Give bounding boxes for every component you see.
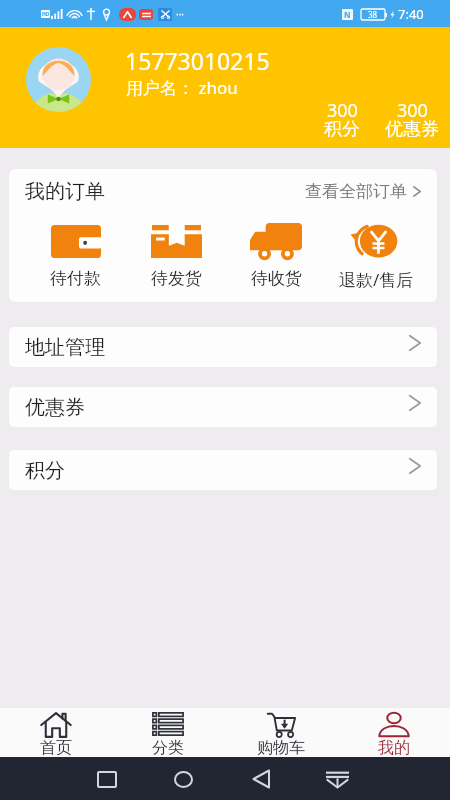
staticText: 待发货 xyxy=(151,268,202,289)
staticText: 地址管理 xyxy=(25,335,105,360)
button[interactable]: Hide navigation bar xyxy=(299,759,376,799)
staticText: 待收货 xyxy=(251,268,302,289)
staticText: ··· xyxy=(176,7,185,21)
button[interactable]: Home xyxy=(145,759,222,799)
staticText: 购物车 xyxy=(257,738,305,757)
staticText: 积分 xyxy=(25,458,65,483)
staticText: 我的 xyxy=(378,738,410,757)
staticText: 查看全部订单 xyxy=(305,181,407,202)
staticText: 分类 xyxy=(152,738,184,757)
button[interactable]: 首页 xyxy=(0,708,112,757)
staticText: 我的订单 xyxy=(25,179,105,204)
staticText: 积分 xyxy=(324,118,360,141)
button[interactable]: 我的订单 xyxy=(9,169,437,213)
button[interactable]: 待收货 xyxy=(226,213,326,302)
button[interactable]: Recent apps xyxy=(68,759,145,799)
staticText: HD xyxy=(42,11,50,18)
button[interactable]: 我的 xyxy=(337,708,450,757)
staticText: 用户名： zhou xyxy=(126,76,238,99)
staticText: 待付款 xyxy=(50,268,101,289)
button[interactable]: 退款/售后 xyxy=(326,213,426,302)
button[interactable]: 300 xyxy=(377,98,447,146)
staticText: 7:40 xyxy=(398,5,424,23)
button[interactable]: 积分 xyxy=(9,450,437,490)
button[interactable]: 待付款 xyxy=(25,213,126,302)
button[interactable]: 300 xyxy=(307,98,377,146)
staticText: 优惠券 xyxy=(25,395,85,420)
button[interactable]: Avatar xyxy=(26,47,91,112)
button[interactable]: 分类 xyxy=(112,708,224,757)
button[interactable]: 待发货 xyxy=(126,213,226,302)
button[interactable]: 购物车 xyxy=(224,708,337,757)
button[interactable]: 优惠券 xyxy=(9,387,437,427)
staticText: N xyxy=(344,9,351,20)
button[interactable]: Back xyxy=(222,759,299,799)
staticText: 300 xyxy=(397,98,428,123)
staticText: 优惠券 xyxy=(385,118,439,141)
staticText: 首页 xyxy=(40,738,72,757)
button[interactable]: 地址管理 xyxy=(9,327,437,367)
staticText: 300 xyxy=(327,98,358,123)
staticText: 退款/售后 xyxy=(339,268,414,291)
staticText: 15773010215 xyxy=(125,45,270,76)
staticText: 38 xyxy=(368,9,378,20)
